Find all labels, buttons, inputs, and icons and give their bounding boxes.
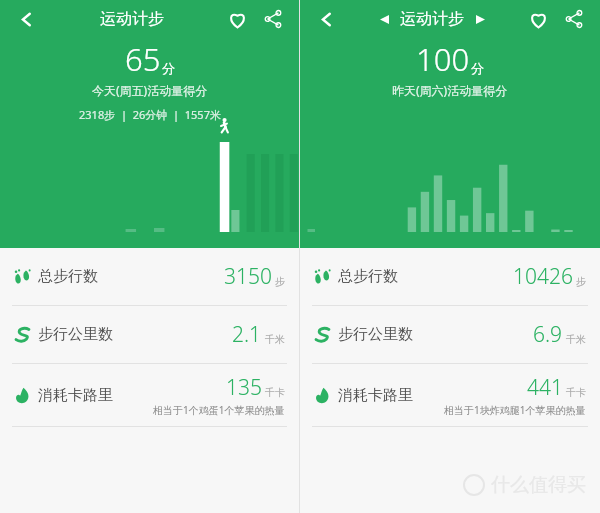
button[interactable]: Back <box>309 2 343 36</box>
button[interactable]: 步行公里数 <box>300 306 600 363</box>
button[interactable]: Share <box>256 2 290 36</box>
button[interactable]: Favorite <box>521 2 555 36</box>
button[interactable]: 消耗卡路里 <box>300 364 600 426</box>
button[interactable]: 总步行数 <box>300 248 600 305</box>
staticText: 分 <box>471 60 484 76</box>
staticText: 消耗卡路里 <box>38 386 113 405</box>
staticText: 昨天(周六)活动量得分 <box>392 82 508 98</box>
button[interactable]: Previous day <box>373 8 395 30</box>
staticText: 千卡 <box>265 386 285 399</box>
staticText: 10426 <box>513 262 573 291</box>
staticText: 100 <box>416 38 470 80</box>
staticText: 2.1 <box>232 320 262 349</box>
staticText: 千米 <box>265 333 285 346</box>
staticText: 步行公里数 <box>38 325 113 344</box>
staticText: 6.9 <box>533 320 563 349</box>
staticText: 3150 <box>224 262 272 291</box>
staticText: 65 <box>125 38 161 80</box>
staticText: 分 <box>162 60 175 76</box>
button[interactable]: 消耗卡路里 <box>0 364 299 426</box>
staticText: 运动计步 <box>100 9 164 29</box>
staticText: 消耗卡路里 <box>338 386 413 405</box>
staticText: 步 <box>576 275 586 288</box>
staticText: 相当于1块炸鸡腿1个苹果的热量 <box>444 403 586 417</box>
button[interactable]: Next day <box>469 8 491 30</box>
staticText: 步行公里数 <box>338 325 413 344</box>
staticText: 运动计步 <box>400 9 464 29</box>
staticText: 135 <box>226 373 262 402</box>
button[interactable]: 总步行数 <box>0 248 299 305</box>
staticText: 2318步 | 26分钟 | 1557米 <box>79 107 221 122</box>
button[interactable]: Back <box>9 2 43 36</box>
staticText: 总步行数 <box>38 267 98 286</box>
staticText: 什么值得买 <box>491 473 586 497</box>
button[interactable]: Share <box>557 2 591 36</box>
staticText: 总步行数 <box>338 267 398 286</box>
staticText: 千米 <box>566 333 586 346</box>
staticText: 千卡 <box>566 386 586 399</box>
staticText: 今天(周五)活动量得分 <box>92 82 208 98</box>
staticText: 步 <box>275 275 285 288</box>
button[interactable]: Favorite <box>220 2 254 36</box>
staticText: 441 <box>527 373 563 402</box>
staticText: 相当于1个鸡蛋1个苹果的热量 <box>153 403 285 417</box>
button[interactable]: 步行公里数 <box>0 306 299 363</box>
